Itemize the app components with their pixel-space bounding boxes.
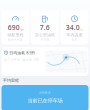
button[interactable]: 7.6 [31,10,59,44]
button[interactable]: 34.0 [60,10,88,44]
button[interactable]: 日均油耗 8.9升 [1,47,88,76]
staticText: 续航里程 [7,33,23,37]
staticText: 日均油耗 8.9升 [9,50,35,55]
staticText: 车内温度 [66,33,82,37]
staticText: km [20,28,23,32]
staticText: 近 7 天平均 · 较上周 -3% [4,58,38,61]
staticText: 当前已在停车场 [27,97,62,104]
staticText: 剩余可行驶 [8,38,23,41]
button[interactable]: 690 [1,10,29,44]
staticText: 百公里油耗 [35,33,55,37]
staticText: 平均里程 [3,78,19,83]
staticText: 34.0 [66,23,80,32]
staticText: 当前 [71,38,77,41]
button[interactable]: 当前状态 [1,85,88,110]
staticText: ℃ [80,28,83,32]
staticText: 平均值 [40,38,49,41]
staticText: 690 [8,23,20,32]
staticText: 7.6 [40,23,50,32]
staticText: 当前状态 [39,91,51,94]
